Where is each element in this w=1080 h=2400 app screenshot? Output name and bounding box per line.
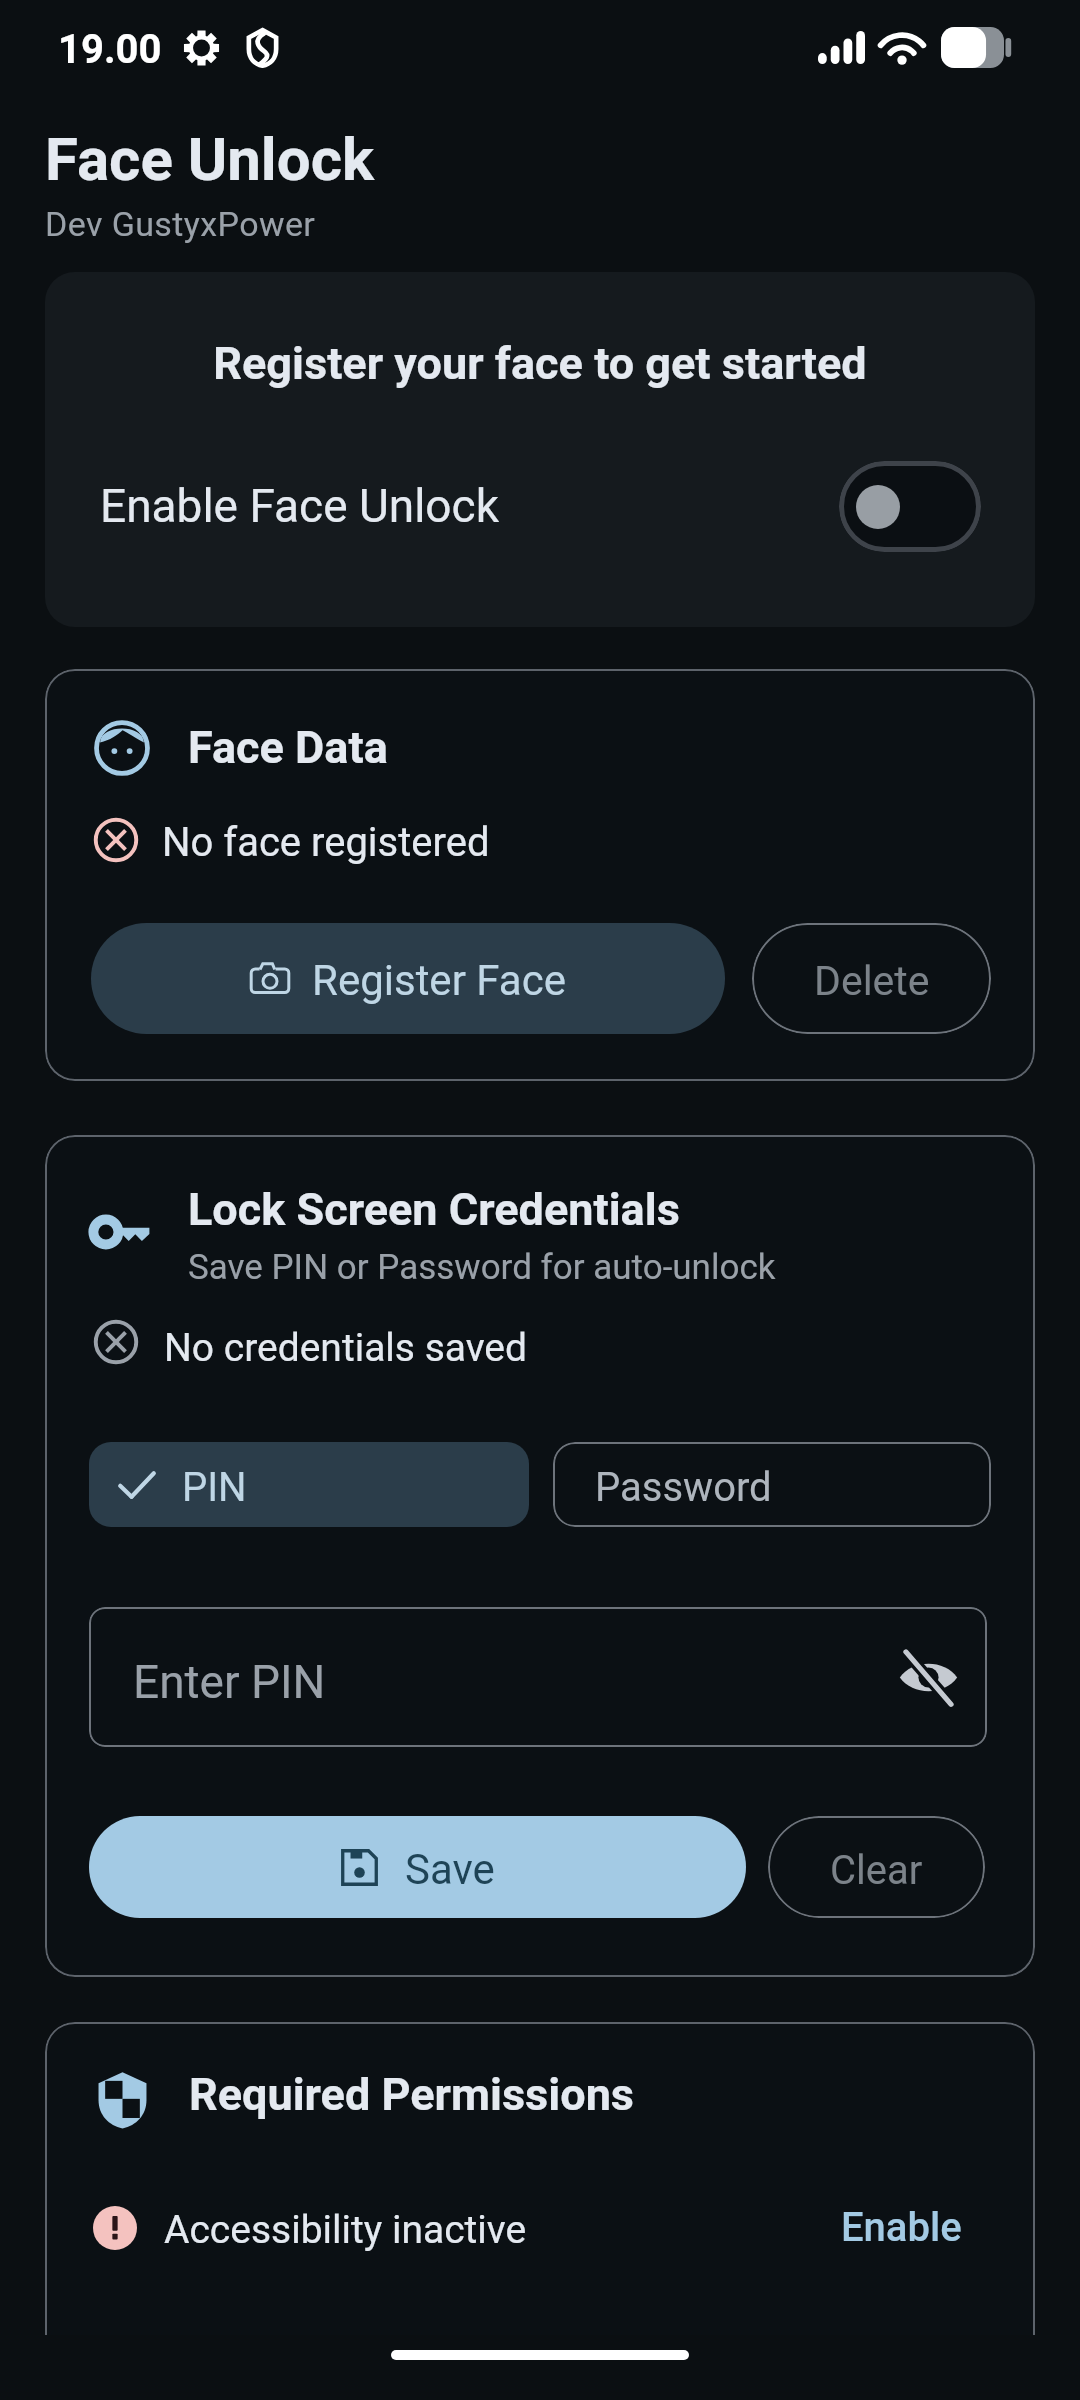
staticText: Face Data (188, 721, 388, 774)
button[interactable]: Enable Face Unlock (45, 460, 1035, 552)
staticText: Register your face to get started (45, 337, 1035, 390)
staticText: Required Permissions (189, 2068, 634, 2121)
staticText: Enter PIN (133, 1655, 326, 1709)
button[interactable]: Enable (835, 2198, 968, 2257)
button[interactable]: Enter PIN (89, 1607, 987, 1747)
staticText: No face registered (162, 819, 490, 866)
staticText: Enable Face Unlock (100, 479, 499, 533)
button[interactable]: Clear (768, 1816, 985, 1918)
staticText: Password (595, 1464, 772, 1511)
staticText: Accessibility inactive (164, 2207, 527, 2253)
staticText: Register Face (312, 956, 566, 1005)
button[interactable]: Save (89, 1816, 746, 1918)
button[interactable]: Enable Face Unlock toggle (839, 461, 981, 552)
button[interactable]: Show PIN (898, 1647, 959, 1708)
staticText: Face Unlock (45, 124, 375, 194)
button[interactable]: Register Face (91, 923, 725, 1034)
staticText: Delete (814, 957, 930, 1005)
staticText: Save (405, 1845, 495, 1894)
staticText: Clear (830, 1847, 923, 1894)
staticText: Enable (841, 2204, 962, 2251)
staticText: Lock Screen Credentials (188, 1183, 680, 1236)
staticText: PIN (182, 1464, 247, 1511)
button[interactable]: PIN (89, 1442, 529, 1527)
staticText: No credentials saved (164, 1325, 528, 1371)
staticText: Dev GustyxPower (45, 204, 316, 244)
button[interactable]: Password (553, 1442, 991, 1527)
staticText: Save PIN or Password for auto-unlock (188, 1247, 776, 1288)
staticText: 19.00 (58, 26, 162, 73)
button[interactable]: Delete (752, 923, 991, 1034)
